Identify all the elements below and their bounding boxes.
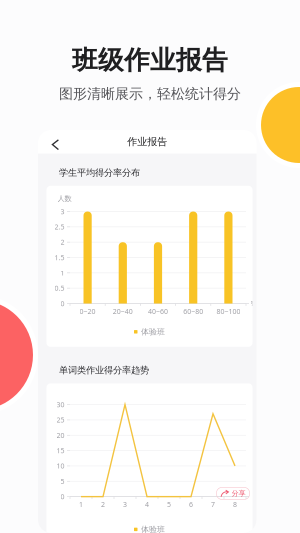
staticText: 30 [56, 400, 64, 409]
staticText: 体验班 [141, 524, 165, 533]
staticText: 7 [211, 500, 215, 509]
staticText: 3 [60, 207, 64, 216]
staticText: 40~60 [148, 307, 168, 316]
staticText: 8 [233, 500, 237, 509]
staticText: 1.5 [54, 253, 64, 262]
staticText: 2 [101, 500, 105, 509]
staticText: 学生平均得分率分布 [59, 167, 140, 178]
staticText: 0 [60, 492, 64, 501]
staticText: 25 [56, 415, 64, 425]
staticText: 10 [56, 461, 64, 471]
staticText: 20 [56, 430, 64, 440]
staticText: 5 [167, 500, 171, 509]
staticText: 0~20 [80, 307, 96, 316]
staticText: 1 [79, 500, 83, 509]
staticText: % [250, 298, 256, 308]
button[interactable]: 返回 [44, 134, 66, 156]
button[interactable]: 分享 [216, 487, 250, 499]
staticText: 60~80 [183, 307, 203, 316]
staticText: 0.5 [54, 283, 64, 293]
staticText: 15 [56, 446, 64, 455]
staticText: 图形清晰展示，轻松统计得分 [59, 85, 241, 103]
staticText: 1 [60, 268, 64, 277]
staticText: 单词类作业得分率趋势 [59, 364, 149, 376]
staticText: 2.5 [54, 222, 64, 231]
staticText: 0 [60, 299, 64, 308]
staticText: 2 [60, 237, 64, 247]
staticText: 3 [123, 500, 127, 509]
staticText: 80~100 [216, 307, 240, 316]
staticText: 20~40 [113, 307, 133, 316]
staticText: 5 [60, 476, 64, 486]
staticText: 班级作业报告 [72, 44, 228, 76]
staticText: 体验班 [141, 327, 165, 337]
staticText: 作业报告 [127, 135, 167, 148]
staticText: 4 [145, 500, 149, 509]
staticText: 人数 [57, 194, 71, 203]
staticText: 6 [189, 500, 193, 509]
staticText: 分享 [232, 489, 246, 498]
